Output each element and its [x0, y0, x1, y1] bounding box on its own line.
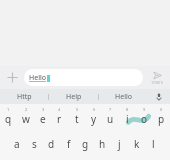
button[interactable]: l	[145, 133, 162, 153]
button[interactable]: 0	[153, 107, 170, 127]
button[interactable]: Send	[146, 67, 168, 89]
staticText: 2	[25, 107, 28, 112]
button[interactable]: 6	[85, 107, 102, 127]
staticText: 9	[143, 107, 146, 112]
staticText: 5	[76, 107, 79, 112]
staticText: k	[134, 137, 140, 151]
staticText: j	[118, 137, 121, 151]
staticText: Help	[66, 92, 82, 102]
button[interactable]: g	[77, 133, 94, 153]
staticText: 8	[126, 107, 129, 112]
staticText: s	[32, 137, 37, 151]
button[interactable]: f	[60, 133, 77, 153]
button[interactable]: 9	[136, 107, 153, 127]
button[interactable]: Add attachment	[3, 68, 22, 87]
staticText: w	[22, 112, 30, 126]
button[interactable]: Hello	[24, 69, 143, 86]
staticText: 0	[160, 107, 163, 112]
staticText: Hello	[29, 73, 46, 83]
button[interactable]: d	[43, 133, 60, 153]
button[interactable]: Help	[49, 89, 98, 104]
button[interactable]: a	[8, 133, 26, 153]
staticText: 1	[7, 107, 10, 112]
button[interactable]: 2	[17, 107, 34, 127]
button[interactable]: j	[111, 133, 128, 153]
staticText: d	[48, 137, 55, 151]
staticText: l	[152, 137, 155, 151]
staticText: t	[75, 112, 79, 126]
staticText: g	[82, 137, 89, 151]
button[interactable]: Hello	[99, 89, 148, 104]
staticText: f	[67, 137, 71, 151]
staticText: 3	[42, 107, 45, 112]
staticText: r	[57, 112, 62, 126]
button[interactable]: 5	[68, 107, 85, 127]
staticText: u	[107, 112, 114, 126]
staticText: 7	[109, 107, 112, 112]
staticText: h	[99, 137, 106, 151]
button[interactable]: h	[94, 133, 111, 153]
staticText: e	[40, 112, 46, 126]
button[interactable]: s	[26, 133, 43, 153]
button[interactable]: 7	[102, 107, 119, 127]
staticText: a	[14, 137, 20, 151]
button[interactable]: 1	[0, 107, 17, 127]
button[interactable]: Http	[0, 89, 48, 104]
button[interactable]: Voice input	[148, 89, 170, 104]
button[interactable]: 4	[51, 107, 68, 127]
staticText: i	[126, 112, 129, 126]
staticText: q	[5, 112, 12, 126]
staticText: p	[158, 112, 165, 126]
staticText: y	[91, 112, 97, 126]
button[interactable]: k	[128, 133, 145, 153]
staticText: 1/160(1)	[151, 81, 163, 85]
staticText: 4	[58, 107, 61, 112]
staticText: Hello	[115, 92, 132, 102]
staticText: Http	[17, 92, 32, 102]
button[interactable]: 8	[119, 107, 136, 127]
staticText: o	[141, 112, 148, 126]
button[interactable]: 3	[34, 107, 51, 127]
staticText: 6	[93, 107, 96, 112]
